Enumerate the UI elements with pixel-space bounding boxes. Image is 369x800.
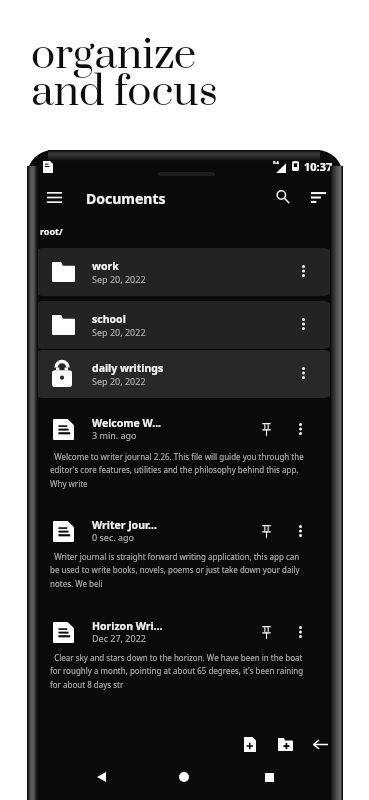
staticText: 10:37 xyxy=(304,159,333,174)
button[interactable]: Pin xyxy=(254,414,278,444)
staticText: organize xyxy=(31,28,197,82)
staticText: root/ xyxy=(40,225,63,237)
button[interactable]: Writer Jour... xyxy=(33,516,333,546)
button[interactable]: Horizon Wri... xyxy=(33,617,333,647)
staticText: 0 sec. ago xyxy=(92,531,134,543)
button[interactable]: Pin xyxy=(254,516,278,546)
staticText: Horizon Wri... xyxy=(92,619,163,633)
staticText: school xyxy=(92,312,126,326)
button[interactable]: New file xyxy=(239,733,261,755)
staticText: and focus xyxy=(31,65,218,119)
staticText: Documents xyxy=(86,189,166,208)
staticText: Writer journal is straight forward writi… xyxy=(50,551,308,589)
button[interactable]: work xyxy=(33,248,333,296)
button[interactable]: Back xyxy=(309,733,331,755)
button[interactable]: Menu xyxy=(39,184,69,210)
staticText: daily writings xyxy=(92,361,164,375)
staticText: Welcome to writer journal 2.26. This fil… xyxy=(50,451,308,489)
button[interactable]: Sort xyxy=(305,184,331,210)
button[interactable]: More options xyxy=(288,617,312,647)
button[interactable]: school xyxy=(33,301,333,349)
button[interactable]: Welcome W... xyxy=(33,414,333,444)
staticText: work xyxy=(92,259,119,273)
button[interactable]: More options xyxy=(291,301,315,347)
staticText: Dec 27, 2022 xyxy=(92,632,146,644)
button[interactable]: More options xyxy=(288,414,312,444)
button[interactable]: Back xyxy=(90,766,112,788)
staticText: Sep 20, 2022 xyxy=(92,326,146,338)
button[interactable]: Recents xyxy=(258,766,280,788)
staticText: Writer Jour... xyxy=(92,518,157,532)
staticText: Welcome W... xyxy=(92,416,162,430)
button[interactable]: Pin xyxy=(254,617,278,647)
button[interactable]: More options xyxy=(288,516,312,546)
button[interactable]: More options xyxy=(291,350,315,396)
staticText: Clear sky and stars down to the horizon.… xyxy=(50,652,308,690)
button[interactable]: Search xyxy=(270,184,296,210)
button[interactable]: More options xyxy=(291,248,315,294)
button[interactable]: New folder xyxy=(274,733,296,755)
button[interactable]: Home xyxy=(173,766,195,788)
staticText: Sep 20, 2022 xyxy=(92,273,146,285)
button[interactable]: daily writings xyxy=(33,350,333,398)
staticText: 3 min. ago xyxy=(92,429,137,441)
staticText: Sep 20, 2022 xyxy=(92,375,146,387)
